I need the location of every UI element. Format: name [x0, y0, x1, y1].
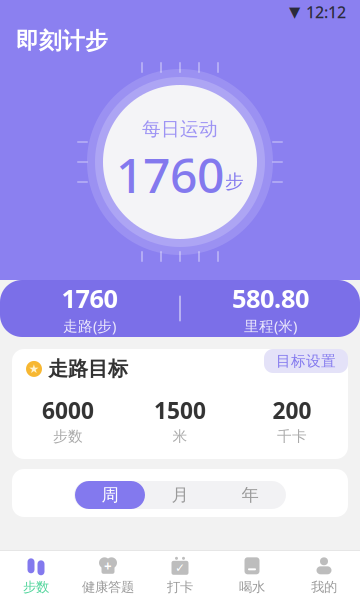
staticText: 步数 — [53, 427, 83, 445]
staticText: ▼ — [289, 4, 300, 20]
button[interactable]: 年 — [215, 481, 285, 509]
staticText: 走路(步) — [63, 316, 116, 336]
staticText: 1500 — [154, 395, 206, 425]
staticText: ✓ — [175, 561, 185, 575]
button[interactable]: 周 — [75, 481, 145, 509]
button[interactable]: 月 — [145, 481, 215, 509]
staticText: 月 — [171, 484, 188, 506]
staticText: 每日运动 — [142, 118, 218, 141]
staticText: 12:12 — [306, 1, 346, 23]
button[interactable]: ✓ — [144, 551, 216, 600]
staticText: ★ — [28, 362, 39, 376]
staticText: 1760 — [116, 143, 224, 206]
staticText: 喝水 — [239, 579, 265, 595]
staticText: + — [104, 557, 112, 575]
staticText: 580.80 — [232, 281, 309, 315]
staticText: 年 — [241, 484, 258, 506]
button[interactable]: 我的 — [288, 551, 360, 600]
staticText: 千卡 — [277, 427, 307, 445]
staticText: 打卡 — [167, 579, 193, 595]
staticText: 6000 — [42, 395, 94, 425]
staticText: 我的 — [311, 579, 337, 595]
staticText: 走路目标 — [48, 357, 128, 381]
button[interactable]: + — [72, 551, 144, 600]
button[interactable]: 喝水 — [216, 551, 288, 600]
staticText: 目标设置 — [276, 352, 336, 370]
button[interactable]: 步数 — [0, 551, 72, 600]
staticText: 健康答题 — [82, 579, 134, 595]
button[interactable]: 目标设置 — [264, 349, 348, 373]
staticText: 1760 — [61, 281, 117, 315]
staticText: 200 — [272, 395, 311, 425]
staticText: 即刻计步 — [16, 27, 108, 55]
staticText: 米 — [172, 427, 187, 445]
staticText: 周 — [101, 484, 118, 506]
staticText: 步数 — [23, 579, 49, 595]
staticText: 里程(米) — [244, 316, 297, 336]
staticText: 步 — [225, 170, 244, 193]
